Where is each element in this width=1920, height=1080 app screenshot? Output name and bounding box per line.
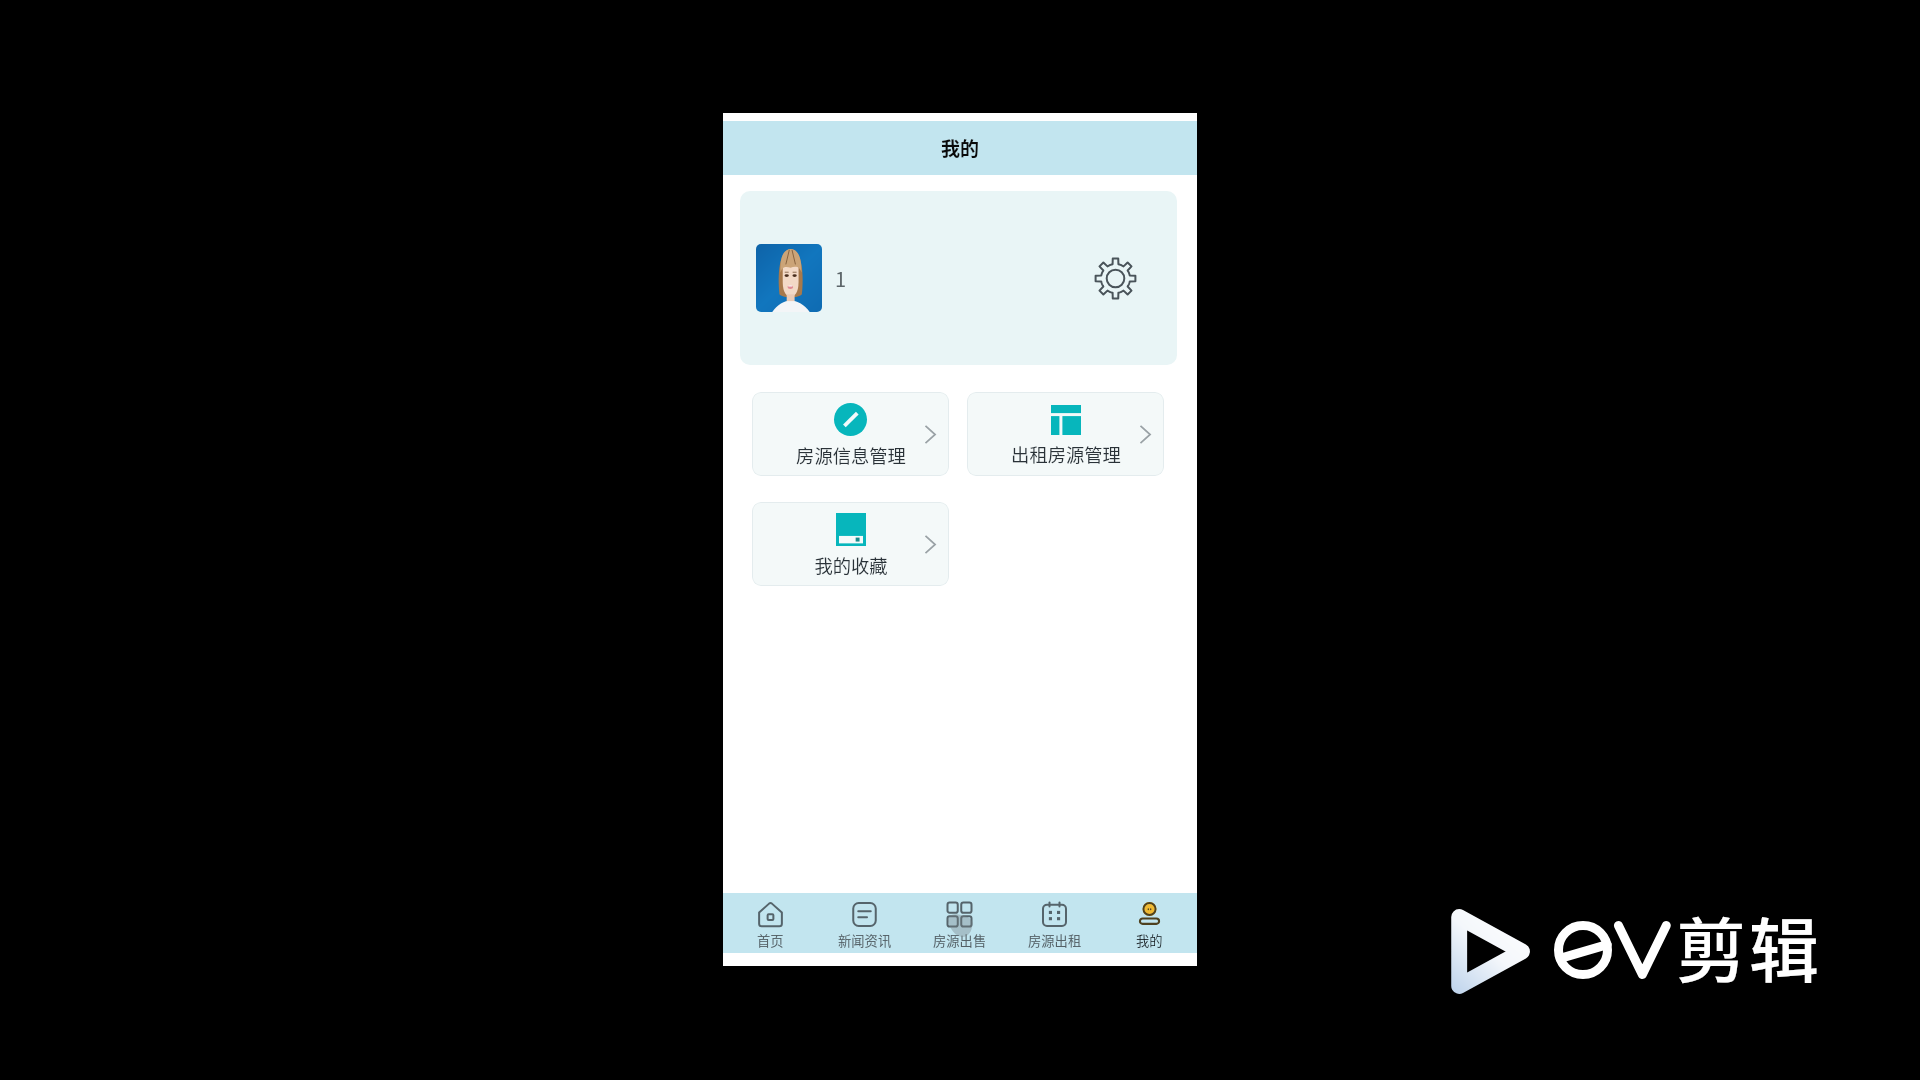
button[interactable]: Settings	[1091, 254, 1139, 302]
button[interactable]: 房源出租	[1007, 893, 1102, 953]
staticText: 房源出租	[1028, 931, 1082, 950]
button[interactable]: 我的	[1102, 893, 1197, 953]
staticText: 新闻资讯	[838, 931, 892, 950]
button[interactable]: 我的收藏	[752, 502, 949, 586]
staticText: 我的收藏	[814, 552, 888, 578]
staticText: 出租房源管理	[1011, 441, 1121, 467]
staticText: 剪辑	[1676, 896, 1822, 992]
staticText: 我的	[1136, 931, 1163, 950]
staticText: 房源信息管理	[796, 442, 906, 468]
button[interactable]: 首页	[723, 893, 817, 953]
staticText: 房源出售	[933, 931, 987, 950]
button[interactable]: 1	[740, 191, 1177, 365]
button[interactable]: 新闻资讯	[817, 893, 912, 953]
staticText: 1	[835, 264, 847, 293]
button[interactable]: 房源信息管理	[752, 392, 949, 476]
staticText: 首页	[757, 931, 784, 950]
staticText: 我的	[941, 134, 980, 162]
button[interactable]: 房源出售	[912, 893, 1007, 953]
button[interactable]: 出租房源管理	[967, 392, 1164, 476]
